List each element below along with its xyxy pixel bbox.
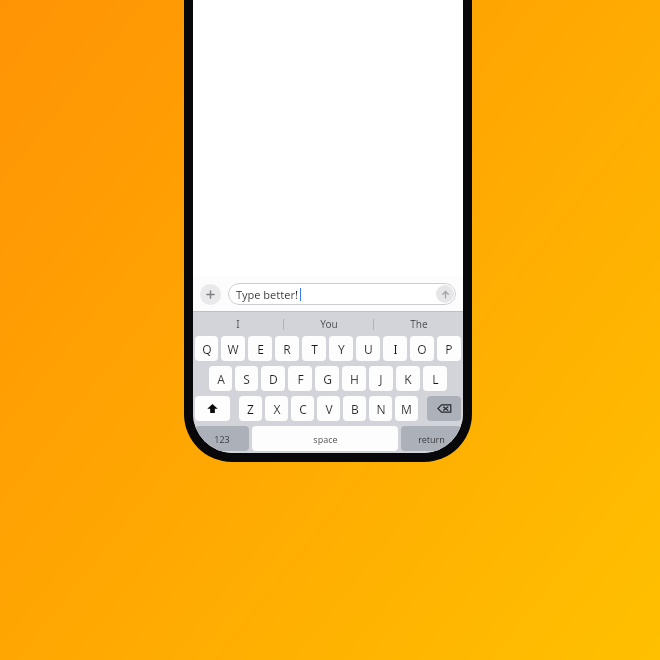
button[interactable]: G: [315, 366, 339, 391]
button[interactable]: P: [437, 336, 461, 361]
staticText: K: [404, 371, 412, 387]
button[interactable]: T: [302, 336, 326, 361]
staticText: J: [379, 371, 383, 387]
staticText: You: [320, 317, 338, 331]
staticText: X: [273, 401, 281, 417]
button[interactable]: Send: [436, 285, 454, 303]
button[interactable]: V: [317, 396, 340, 421]
button[interactable]: Q: [195, 336, 218, 361]
button[interactable]: space: [252, 426, 398, 451]
staticText: I: [393, 341, 398, 357]
staticText: L: [432, 371, 439, 387]
button[interactable]: M: [395, 396, 418, 421]
staticText: space: [313, 433, 338, 445]
button[interactable]: Y: [329, 336, 353, 361]
staticText: return: [418, 433, 445, 445]
button[interactable]: You: [284, 312, 373, 336]
staticText: E: [257, 341, 264, 357]
staticText: Y: [338, 341, 345, 357]
button[interactable]: Add attachment: [200, 284, 221, 305]
button[interactable]: E: [248, 336, 272, 361]
staticText: Z: [247, 401, 254, 417]
staticText: H: [350, 371, 359, 387]
staticText: W: [227, 341, 239, 357]
staticText: S: [243, 371, 250, 387]
button[interactable]: K: [396, 366, 420, 391]
staticText: D: [269, 371, 278, 387]
button[interactable]: R: [275, 336, 299, 361]
staticText: C: [299, 401, 307, 417]
staticText: I: [236, 317, 240, 331]
staticText: The: [410, 317, 428, 331]
staticText: V: [325, 401, 333, 417]
button[interactable]: return: [401, 426, 461, 451]
button[interactable]: N: [369, 396, 392, 421]
staticText: P: [445, 341, 453, 357]
staticText: 123: [214, 433, 230, 445]
staticText: F: [297, 371, 304, 387]
staticText: M: [401, 401, 412, 417]
button[interactable]: S: [235, 366, 258, 391]
button[interactable]: X: [265, 396, 288, 421]
button[interactable]: Type better!: [228, 283, 456, 305]
button[interactable]: Z: [239, 396, 262, 421]
button[interactable]: I: [383, 336, 407, 361]
button[interactable]: F: [288, 366, 312, 391]
button[interactable]: H: [342, 366, 366, 391]
staticText: Q: [202, 341, 212, 357]
staticText: N: [376, 401, 386, 417]
button[interactable]: Backspace: [427, 396, 461, 421]
button[interactable]: J: [369, 366, 393, 391]
staticText: B: [351, 401, 359, 417]
staticText: U: [364, 341, 373, 357]
button[interactable]: A: [209, 366, 232, 391]
staticText: R: [283, 341, 291, 357]
staticText: G: [323, 371, 332, 387]
staticText: A: [217, 371, 225, 387]
button[interactable]: O: [410, 336, 434, 361]
staticText: O: [417, 341, 427, 357]
button[interactable]: The: [374, 312, 463, 336]
button[interactable]: B: [343, 396, 366, 421]
staticText: T: [311, 341, 318, 357]
button[interactable]: D: [261, 366, 285, 391]
button[interactable]: 123: [195, 426, 249, 451]
button[interactable]: L: [423, 366, 447, 391]
button[interactable]: I: [193, 312, 283, 336]
button[interactable]: C: [291, 396, 314, 421]
button[interactable]: U: [356, 336, 380, 361]
button[interactable]: Shift: [195, 396, 230, 421]
staticText: Type better!: [236, 287, 298, 302]
button[interactable]: W: [221, 336, 245, 361]
